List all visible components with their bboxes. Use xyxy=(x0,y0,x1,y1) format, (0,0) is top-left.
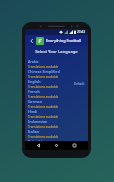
staticText: Translations available xyxy=(28,95,59,99)
button[interactable]: Back xyxy=(28,37,35,44)
button[interactable]: Recent apps xyxy=(70,141,79,150)
staticText: Translations available xyxy=(28,105,59,109)
staticText: Translations available xyxy=(28,75,59,79)
button[interactable]: Italian xyxy=(25,129,88,139)
button[interactable]: Home xyxy=(52,141,61,150)
staticText: Translations available xyxy=(28,125,59,129)
button[interactable]: English xyxy=(25,79,88,89)
staticText: Made with love xyxy=(28,140,47,141)
staticText: Italian xyxy=(28,129,39,134)
staticText: French xyxy=(28,89,40,94)
staticText: German xyxy=(28,99,42,104)
button[interactable]: Hindi xyxy=(25,109,88,119)
button[interactable]: German xyxy=(25,99,88,109)
staticText: Translations available xyxy=(28,135,59,139)
staticText: English xyxy=(28,79,41,84)
button[interactable]: Chinese Simplified xyxy=(25,69,88,79)
staticText: Arabic xyxy=(28,59,39,64)
staticText: 20:43 xyxy=(77,30,86,34)
button[interactable]: Back xyxy=(34,141,43,150)
button[interactable]: Arabic xyxy=(25,59,88,69)
staticText: Everything Football xyxy=(46,38,82,43)
button[interactable]: French xyxy=(25,89,88,99)
staticText: Indonesian xyxy=(28,119,48,124)
staticText: Translations available xyxy=(28,85,59,89)
button[interactable]: Indonesian xyxy=(25,119,88,129)
staticText: Hindi xyxy=(28,109,38,114)
staticText: Select Your Language xyxy=(25,49,88,55)
staticText: Translations available xyxy=(28,115,59,119)
staticText: Default xyxy=(74,82,85,86)
staticText: Chinese Simplified xyxy=(28,69,60,74)
staticText: Translations available xyxy=(28,65,59,69)
